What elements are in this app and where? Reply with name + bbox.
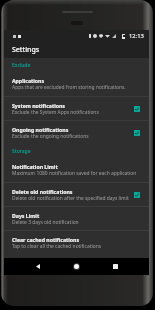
staticText: Notification Limit (12, 163, 58, 170)
staticText: Storage (12, 148, 31, 155)
staticText: Clear cached notifications (12, 236, 80, 243)
button[interactable]: Days Limit (4, 207, 149, 230)
staticText: Delete old notifications (12, 188, 73, 195)
button[interactable]: Delete old notifications (4, 183, 149, 206)
button[interactable]: Notification Limit (4, 158, 149, 182)
staticText: System notifications (12, 102, 65, 109)
staticText: Apps that are excluded from storing noti… (12, 84, 126, 91)
staticText: Exclude the ongoing notifications (12, 133, 89, 140)
staticText: Exclude (12, 62, 31, 69)
button[interactable]: Home (70, 260, 83, 273)
button[interactable]: System notifications (4, 97, 149, 120)
staticText: Ongoing notifications (12, 126, 69, 133)
staticText: Maximum 1080 notification saved for each… (12, 170, 137, 177)
button[interactable]: Clear cached notifications (4, 231, 149, 254)
button[interactable]: Ongoing notifications (4, 121, 149, 144)
staticText: Delete 3 days old notification (12, 219, 79, 226)
button[interactable]: Back (31, 260, 44, 273)
staticText: Applications (12, 77, 45, 84)
staticText: Exclude the System Apps notifications (12, 109, 99, 116)
staticText: Days Limit (12, 212, 40, 219)
staticText: Delete old notification after the specif… (12, 195, 129, 202)
staticText: Tap to clear all the cached notification… (12, 243, 101, 250)
button[interactable]: Recent apps (109, 260, 122, 273)
button[interactable]: Applications (4, 72, 149, 96)
staticText: Settings (12, 45, 40, 55)
staticText: 12:13 (129, 32, 144, 40)
